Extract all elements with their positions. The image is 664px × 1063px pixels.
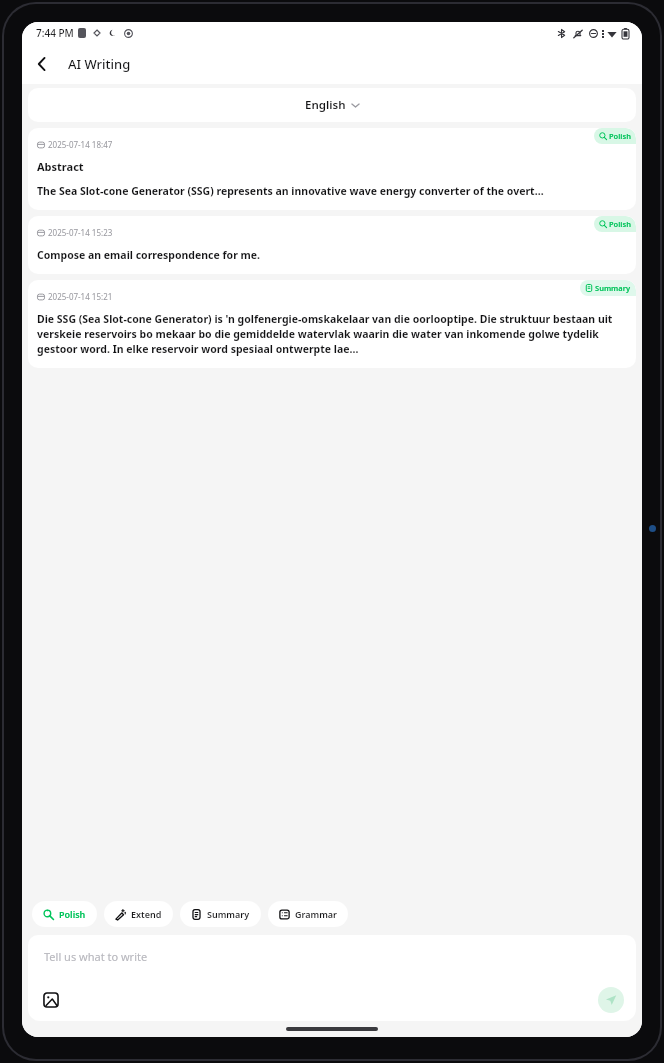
- staticText: 7:44 PM: [36, 26, 74, 40]
- staticText: Compose an email correspondence for me.: [37, 248, 261, 262]
- button[interactable]: Attach image: [40, 989, 62, 1011]
- staticText: 2025-07-14 18:47: [48, 139, 113, 150]
- staticText: English: [305, 97, 346, 113]
- button[interactable]: Polish: [28, 128, 636, 210]
- button[interactable]: Extend: [104, 901, 173, 927]
- staticText: Polish: [609, 131, 631, 141]
- staticText: AI Writing: [68, 55, 131, 73]
- button[interactable]: English: [28, 88, 636, 122]
- button[interactable]: Polish: [28, 216, 636, 274]
- button[interactable]: Grammar: [268, 901, 348, 927]
- staticText: Summary: [207, 908, 250, 920]
- staticText: The Sea Slot-cone Generator (SSG) repres…: [37, 184, 544, 198]
- staticText: Summary: [595, 283, 631, 293]
- staticText: 2025-07-14 15:21: [48, 291, 113, 302]
- staticText: Tell us what to write: [44, 949, 148, 964]
- staticText: Abstract: [37, 159, 84, 174]
- staticText: Grammar: [295, 908, 337, 920]
- button[interactable]: Back: [22, 44, 62, 84]
- staticText: 2025-07-14 15:23: [48, 227, 113, 238]
- button[interactable]: Summary: [28, 280, 636, 368]
- button[interactable]: Summary: [180, 901, 261, 927]
- staticText: Extend: [131, 908, 162, 920]
- staticText: Polish: [59, 908, 86, 920]
- staticText: Polish: [609, 219, 631, 229]
- button[interactable]: Polish: [32, 901, 97, 927]
- staticText: Die SSG (Sea Slot-cone Generator) is 'n …: [37, 312, 627, 356]
- button[interactable]: Send: [598, 987, 624, 1013]
